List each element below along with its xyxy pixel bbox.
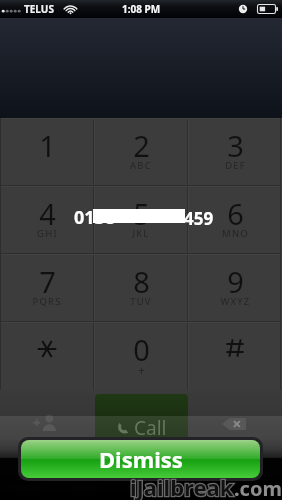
button[interactable]: 9 bbox=[188, 254, 282, 322]
staticText: 7 bbox=[39, 262, 56, 301]
button[interactable]: 0 bbox=[94, 322, 188, 390]
staticText: Keypad bbox=[185, 482, 211, 492]
staticText: Call bbox=[134, 415, 167, 440]
staticText: Dismiss bbox=[99, 444, 183, 474]
staticText: GHI bbox=[37, 227, 58, 240]
staticText: 4 bbox=[39, 194, 56, 233]
button[interactable] bbox=[0, 322, 94, 390]
staticText: DEF bbox=[225, 159, 246, 172]
staticText: Contacts bbox=[127, 482, 158, 492]
button[interactable]: 4 bbox=[0, 186, 94, 254]
button[interactable]: Contacts bbox=[114, 440, 170, 500]
staticText: WXYZ bbox=[220, 295, 251, 308]
staticText: iJailbreak bbox=[130, 472, 234, 500]
staticText: 9 bbox=[227, 262, 244, 301]
button[interactable]: Recents bbox=[57, 440, 114, 500]
button[interactable]: 7 bbox=[0, 254, 94, 322]
button[interactable]: Add to contacts bbox=[0, 390, 95, 440]
staticText: PQRS bbox=[32, 295, 62, 308]
staticText: TELUS bbox=[24, 2, 54, 16]
button[interactable]: 5 bbox=[94, 186, 188, 254]
staticText: iJailbreak bbox=[130, 472, 234, 500]
staticText: + bbox=[138, 362, 145, 378]
staticText: .com bbox=[234, 475, 282, 500]
button[interactable]: Voicemail bbox=[226, 440, 282, 500]
staticText: 6 bbox=[227, 194, 244, 233]
staticText: 1 bbox=[39, 126, 56, 165]
button[interactable]: Delete bbox=[188, 390, 282, 440]
staticText: 0 bbox=[133, 330, 150, 369]
staticText: 8 bbox=[133, 262, 150, 301]
staticText: 459 bbox=[184, 207, 214, 230]
button[interactable]: Dismiss bbox=[21, 440, 260, 478]
staticText: ABC bbox=[130, 159, 152, 172]
staticText: 0138 bbox=[74, 205, 116, 230]
button[interactable]: 6 bbox=[188, 186, 282, 254]
staticText: 3 bbox=[227, 126, 244, 165]
staticText: Voicemail bbox=[237, 482, 271, 492]
staticText: MNO bbox=[222, 227, 249, 240]
staticText: 5 bbox=[133, 194, 150, 233]
button[interactable] bbox=[188, 322, 282, 390]
staticText: JKL bbox=[132, 227, 150, 240]
button[interactable]: Keypad bbox=[170, 440, 226, 500]
button[interactable]: 1 bbox=[0, 118, 94, 186]
button[interactable]: 8 bbox=[94, 254, 188, 322]
staticText: TUV bbox=[130, 295, 152, 308]
button[interactable]: 3 bbox=[188, 118, 282, 186]
button[interactable]: Call bbox=[95, 394, 188, 440]
button[interactable]: 2 bbox=[94, 118, 188, 186]
staticText: 1:08 PM bbox=[122, 2, 161, 16]
staticText: 2 bbox=[133, 126, 150, 165]
button[interactable]: Favorites bbox=[0, 440, 57, 500]
